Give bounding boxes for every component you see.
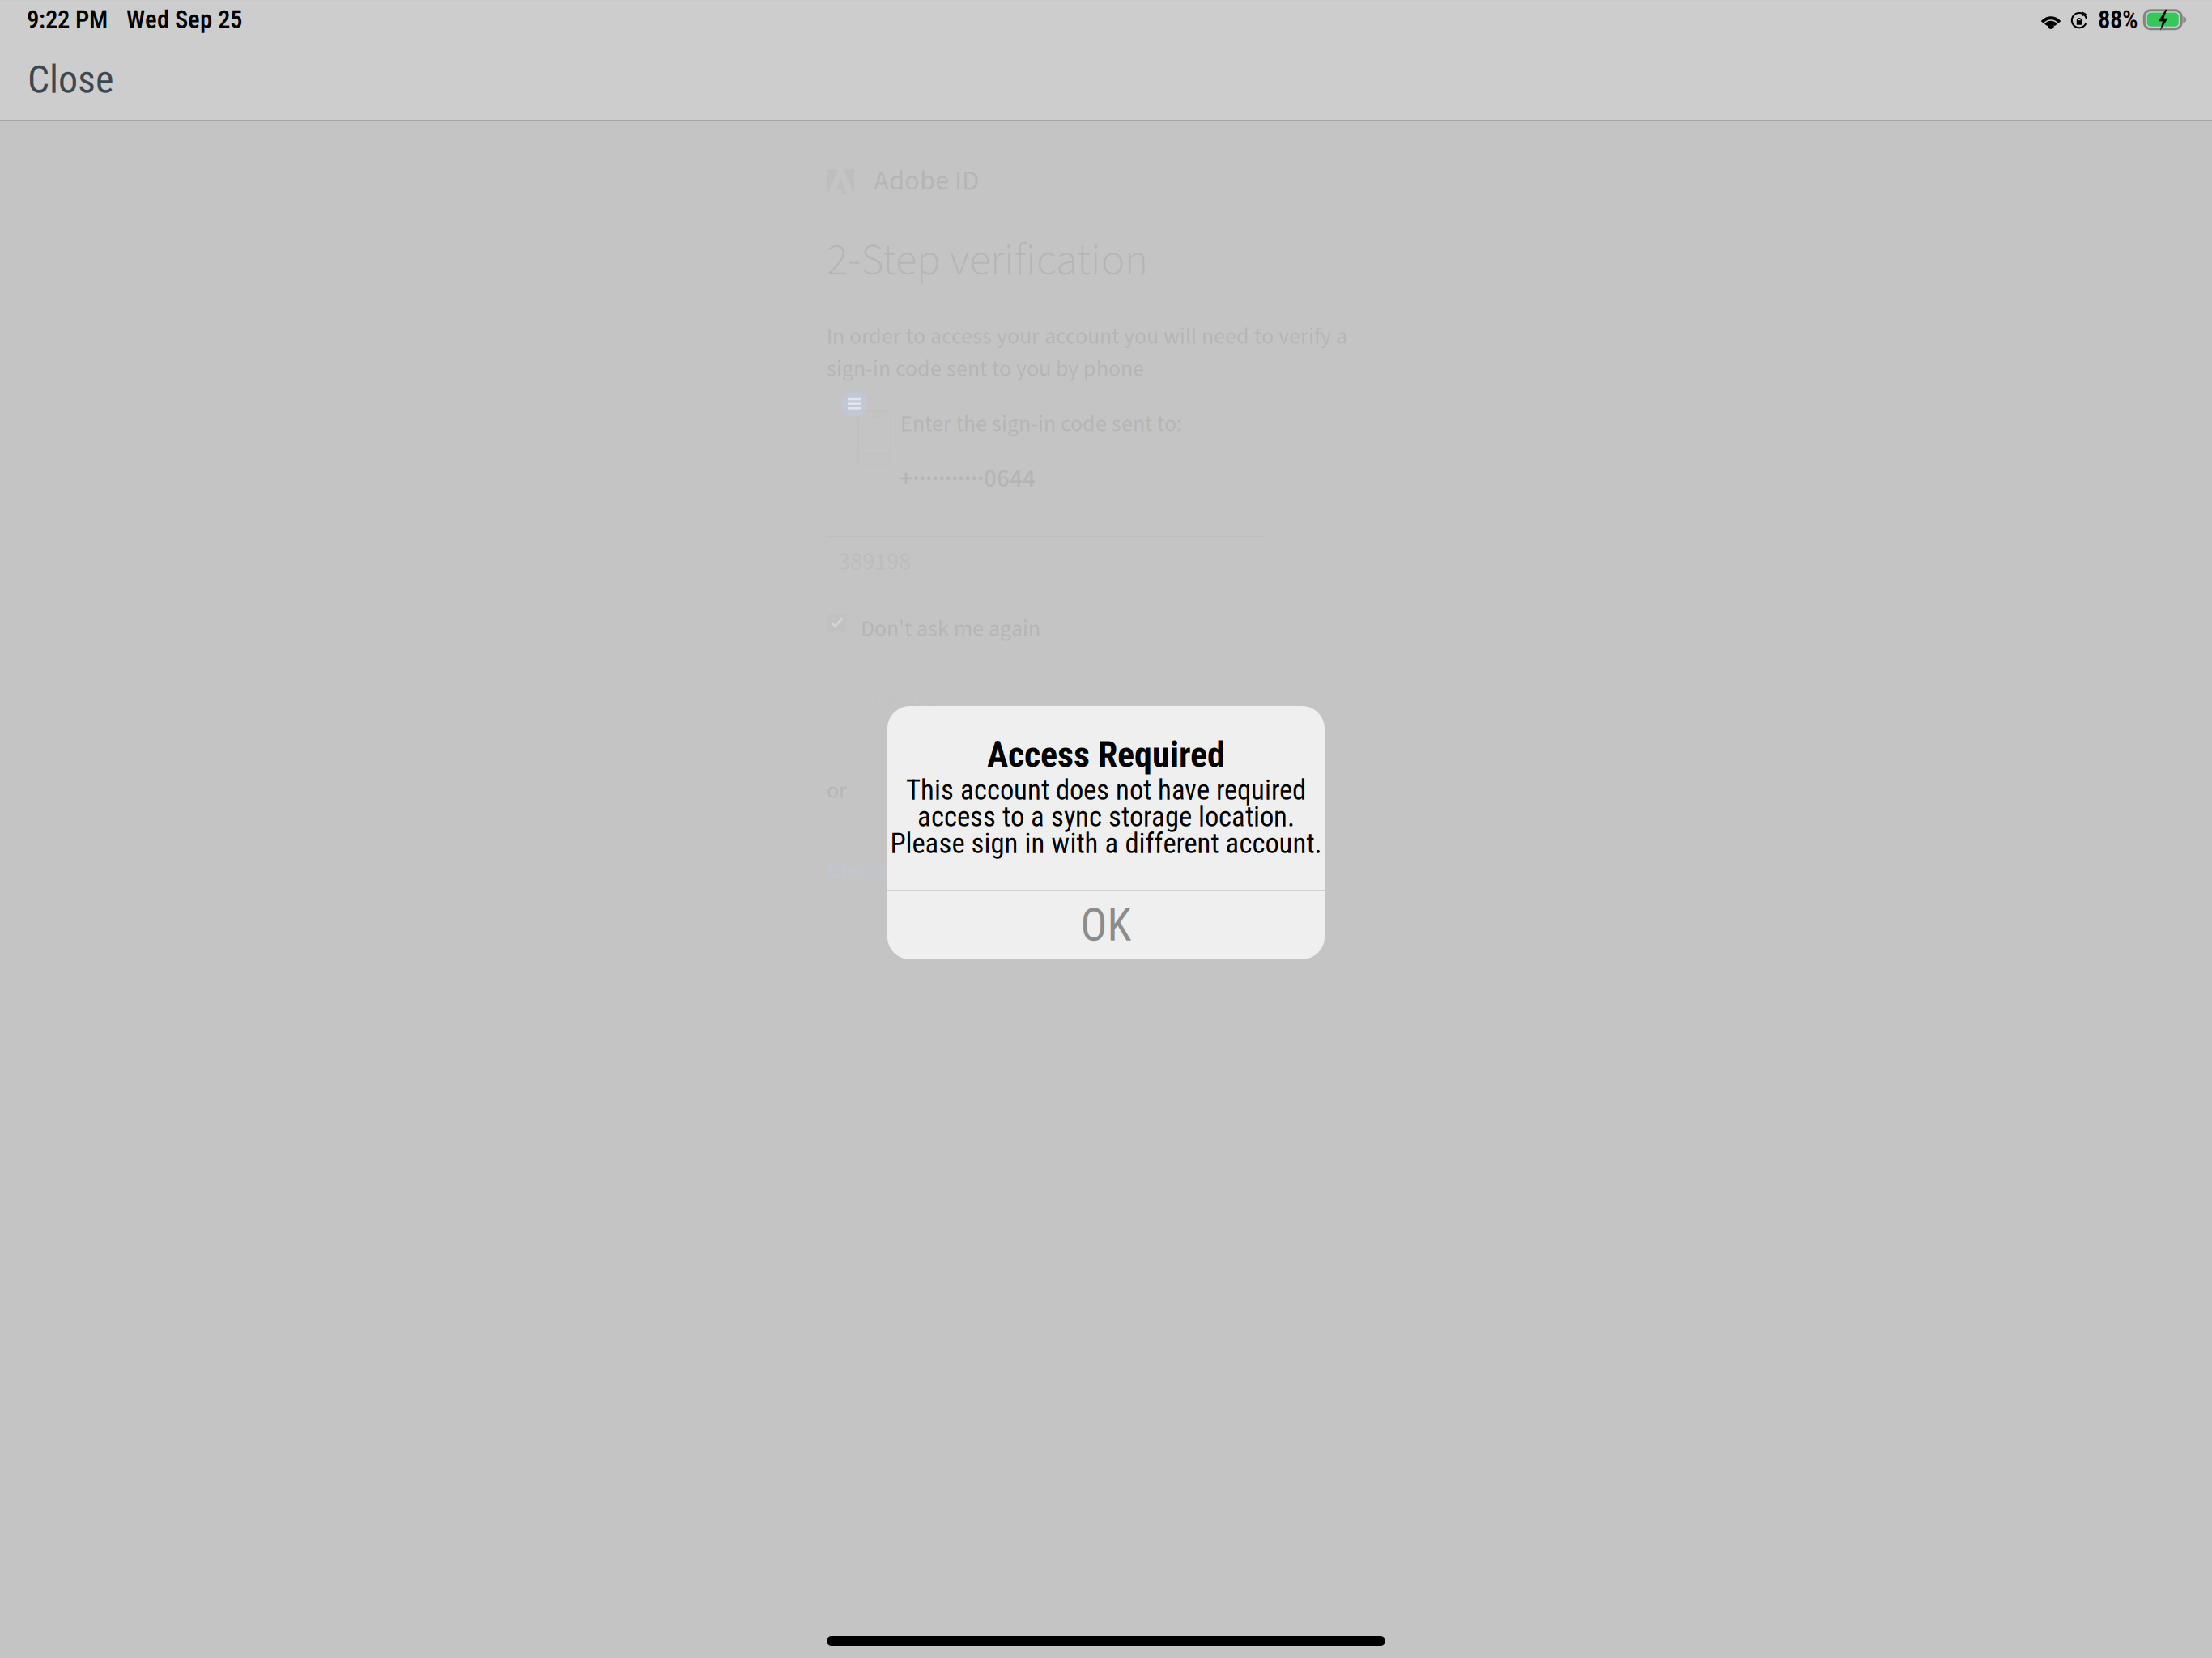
staticText: OK — [1080, 899, 1132, 951]
button[interactable]: Close — [13, 49, 129, 110]
staticText: Adobe ID — [874, 161, 979, 201]
staticText: Choose a different verification method — [827, 855, 1190, 887]
staticText: Wed Sep 25 — [126, 5, 242, 34]
staticText: Access Required — [987, 734, 1225, 776]
staticText: sign-in code sent to you by phone — [827, 353, 1144, 385]
staticText: access to a sync storage location. — [917, 800, 1295, 833]
staticText: +···········0644 — [900, 461, 1036, 497]
staticText: Verify — [873, 681, 938, 720]
staticText: This account does not have required — [906, 774, 1306, 807]
staticText: or — [827, 775, 847, 807]
staticText: Close — [28, 57, 114, 102]
staticText: Please sign in with a different account. — [890, 827, 1322, 860]
button[interactable]: OK — [887, 891, 1325, 959]
staticText: Don't ask me again — [861, 613, 1040, 645]
staticText: Enter the sign-in code sent to: — [900, 408, 1182, 440]
staticText: 88% — [2098, 5, 2138, 34]
staticText: 9:22 PM — [27, 5, 108, 34]
staticText: In order to access your account you will… — [827, 320, 1347, 353]
staticText: 2-Step verification — [827, 229, 1148, 292]
